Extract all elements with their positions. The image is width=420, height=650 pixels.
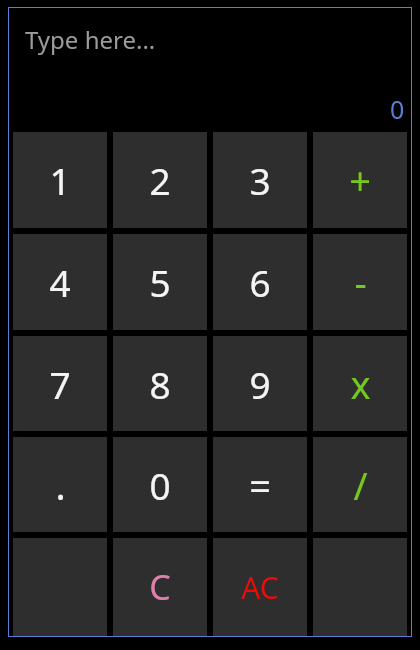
button[interactable]: C bbox=[113, 538, 207, 636]
staticText: 0 bbox=[149, 460, 171, 510]
button[interactable]: 3 bbox=[213, 132, 307, 228]
button[interactable]: / bbox=[313, 437, 407, 532]
staticText: 1 bbox=[49, 155, 71, 205]
button[interactable]: 2 bbox=[113, 132, 207, 228]
staticText: - bbox=[354, 256, 367, 308]
staticText: 6 bbox=[249, 257, 271, 307]
staticText: 7 bbox=[49, 359, 71, 409]
button[interactable]: 4 bbox=[13, 234, 107, 330]
button[interactable]: x bbox=[313, 336, 407, 431]
staticText: 5 bbox=[149, 257, 171, 307]
button[interactable]: 0 bbox=[113, 437, 207, 532]
staticText: C bbox=[149, 564, 171, 610]
button[interactable]: Type here... bbox=[9, 8, 411, 132]
button[interactable]: 6 bbox=[213, 234, 307, 330]
staticText: Type here... bbox=[25, 23, 156, 56]
button[interactable]: 5 bbox=[113, 234, 207, 330]
button[interactable]: . bbox=[13, 437, 107, 532]
staticText: 8 bbox=[149, 359, 171, 409]
button[interactable]: - bbox=[313, 234, 407, 330]
button[interactable]: AC bbox=[213, 538, 307, 636]
staticText: / bbox=[353, 459, 368, 511]
button[interactable]: 9 bbox=[213, 336, 307, 431]
button[interactable]: 8 bbox=[113, 336, 207, 431]
staticText: + bbox=[349, 154, 371, 206]
staticText: = bbox=[249, 459, 271, 511]
staticText: 4 bbox=[49, 257, 71, 307]
button[interactable]: 7 bbox=[13, 336, 107, 431]
staticText: 3 bbox=[249, 155, 271, 205]
staticText: 2 bbox=[149, 155, 171, 205]
staticText: x bbox=[350, 358, 371, 410]
button[interactable]: 1 bbox=[13, 132, 107, 228]
staticText: AC bbox=[241, 567, 279, 608]
button[interactable]: = bbox=[213, 437, 307, 532]
staticText: 9 bbox=[249, 359, 271, 409]
staticText: . bbox=[55, 459, 66, 511]
staticText: 0 bbox=[390, 92, 405, 126]
button[interactable]: + bbox=[313, 132, 407, 228]
